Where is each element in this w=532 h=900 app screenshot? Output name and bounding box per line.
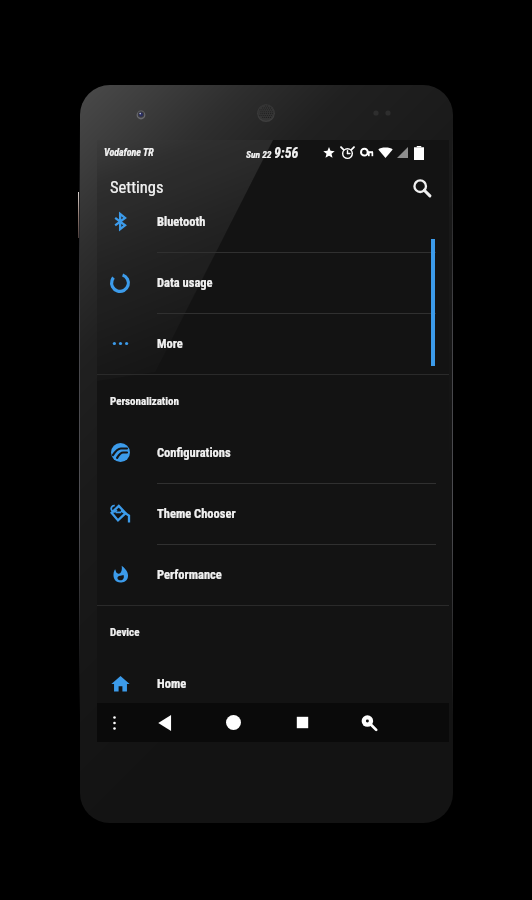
- staticText: Device: [110, 626, 140, 639]
- button[interactable]: Home: [97, 653, 449, 714]
- staticText: Settings: [110, 178, 164, 197]
- staticText: Theme Chooser: [157, 506, 236, 521]
- button[interactable]: Bluetooth: [97, 191, 449, 252]
- button[interactable]: Recents: [281, 703, 323, 742]
- staticText: Sun 22: [246, 149, 274, 160]
- staticText: Vodafone TR: [104, 147, 154, 159]
- button[interactable]: Back: [144, 703, 186, 742]
- staticText: Performance: [157, 567, 222, 582]
- button[interactable]: More: [97, 313, 449, 374]
- staticText: Personalization: [110, 395, 179, 408]
- staticText: 9:56: [274, 145, 299, 161]
- staticText: Configurations: [157, 445, 231, 460]
- staticText: Bluetooth: [157, 214, 206, 229]
- button[interactable]: Search: [406, 172, 438, 204]
- button[interactable]: More options: [93, 703, 135, 742]
- staticText: Home: [157, 676, 187, 691]
- button[interactable]: Home: [212, 703, 254, 742]
- staticText: More: [157, 336, 183, 351]
- button[interactable]: Configurations: [97, 422, 449, 483]
- staticText: Data usage: [157, 275, 213, 290]
- button[interactable]: Theme Chooser: [97, 483, 449, 544]
- button[interactable]: Performance: [97, 544, 449, 605]
- button[interactable]: Search: [348, 703, 390, 742]
- button[interactable]: Data usage: [97, 252, 449, 313]
